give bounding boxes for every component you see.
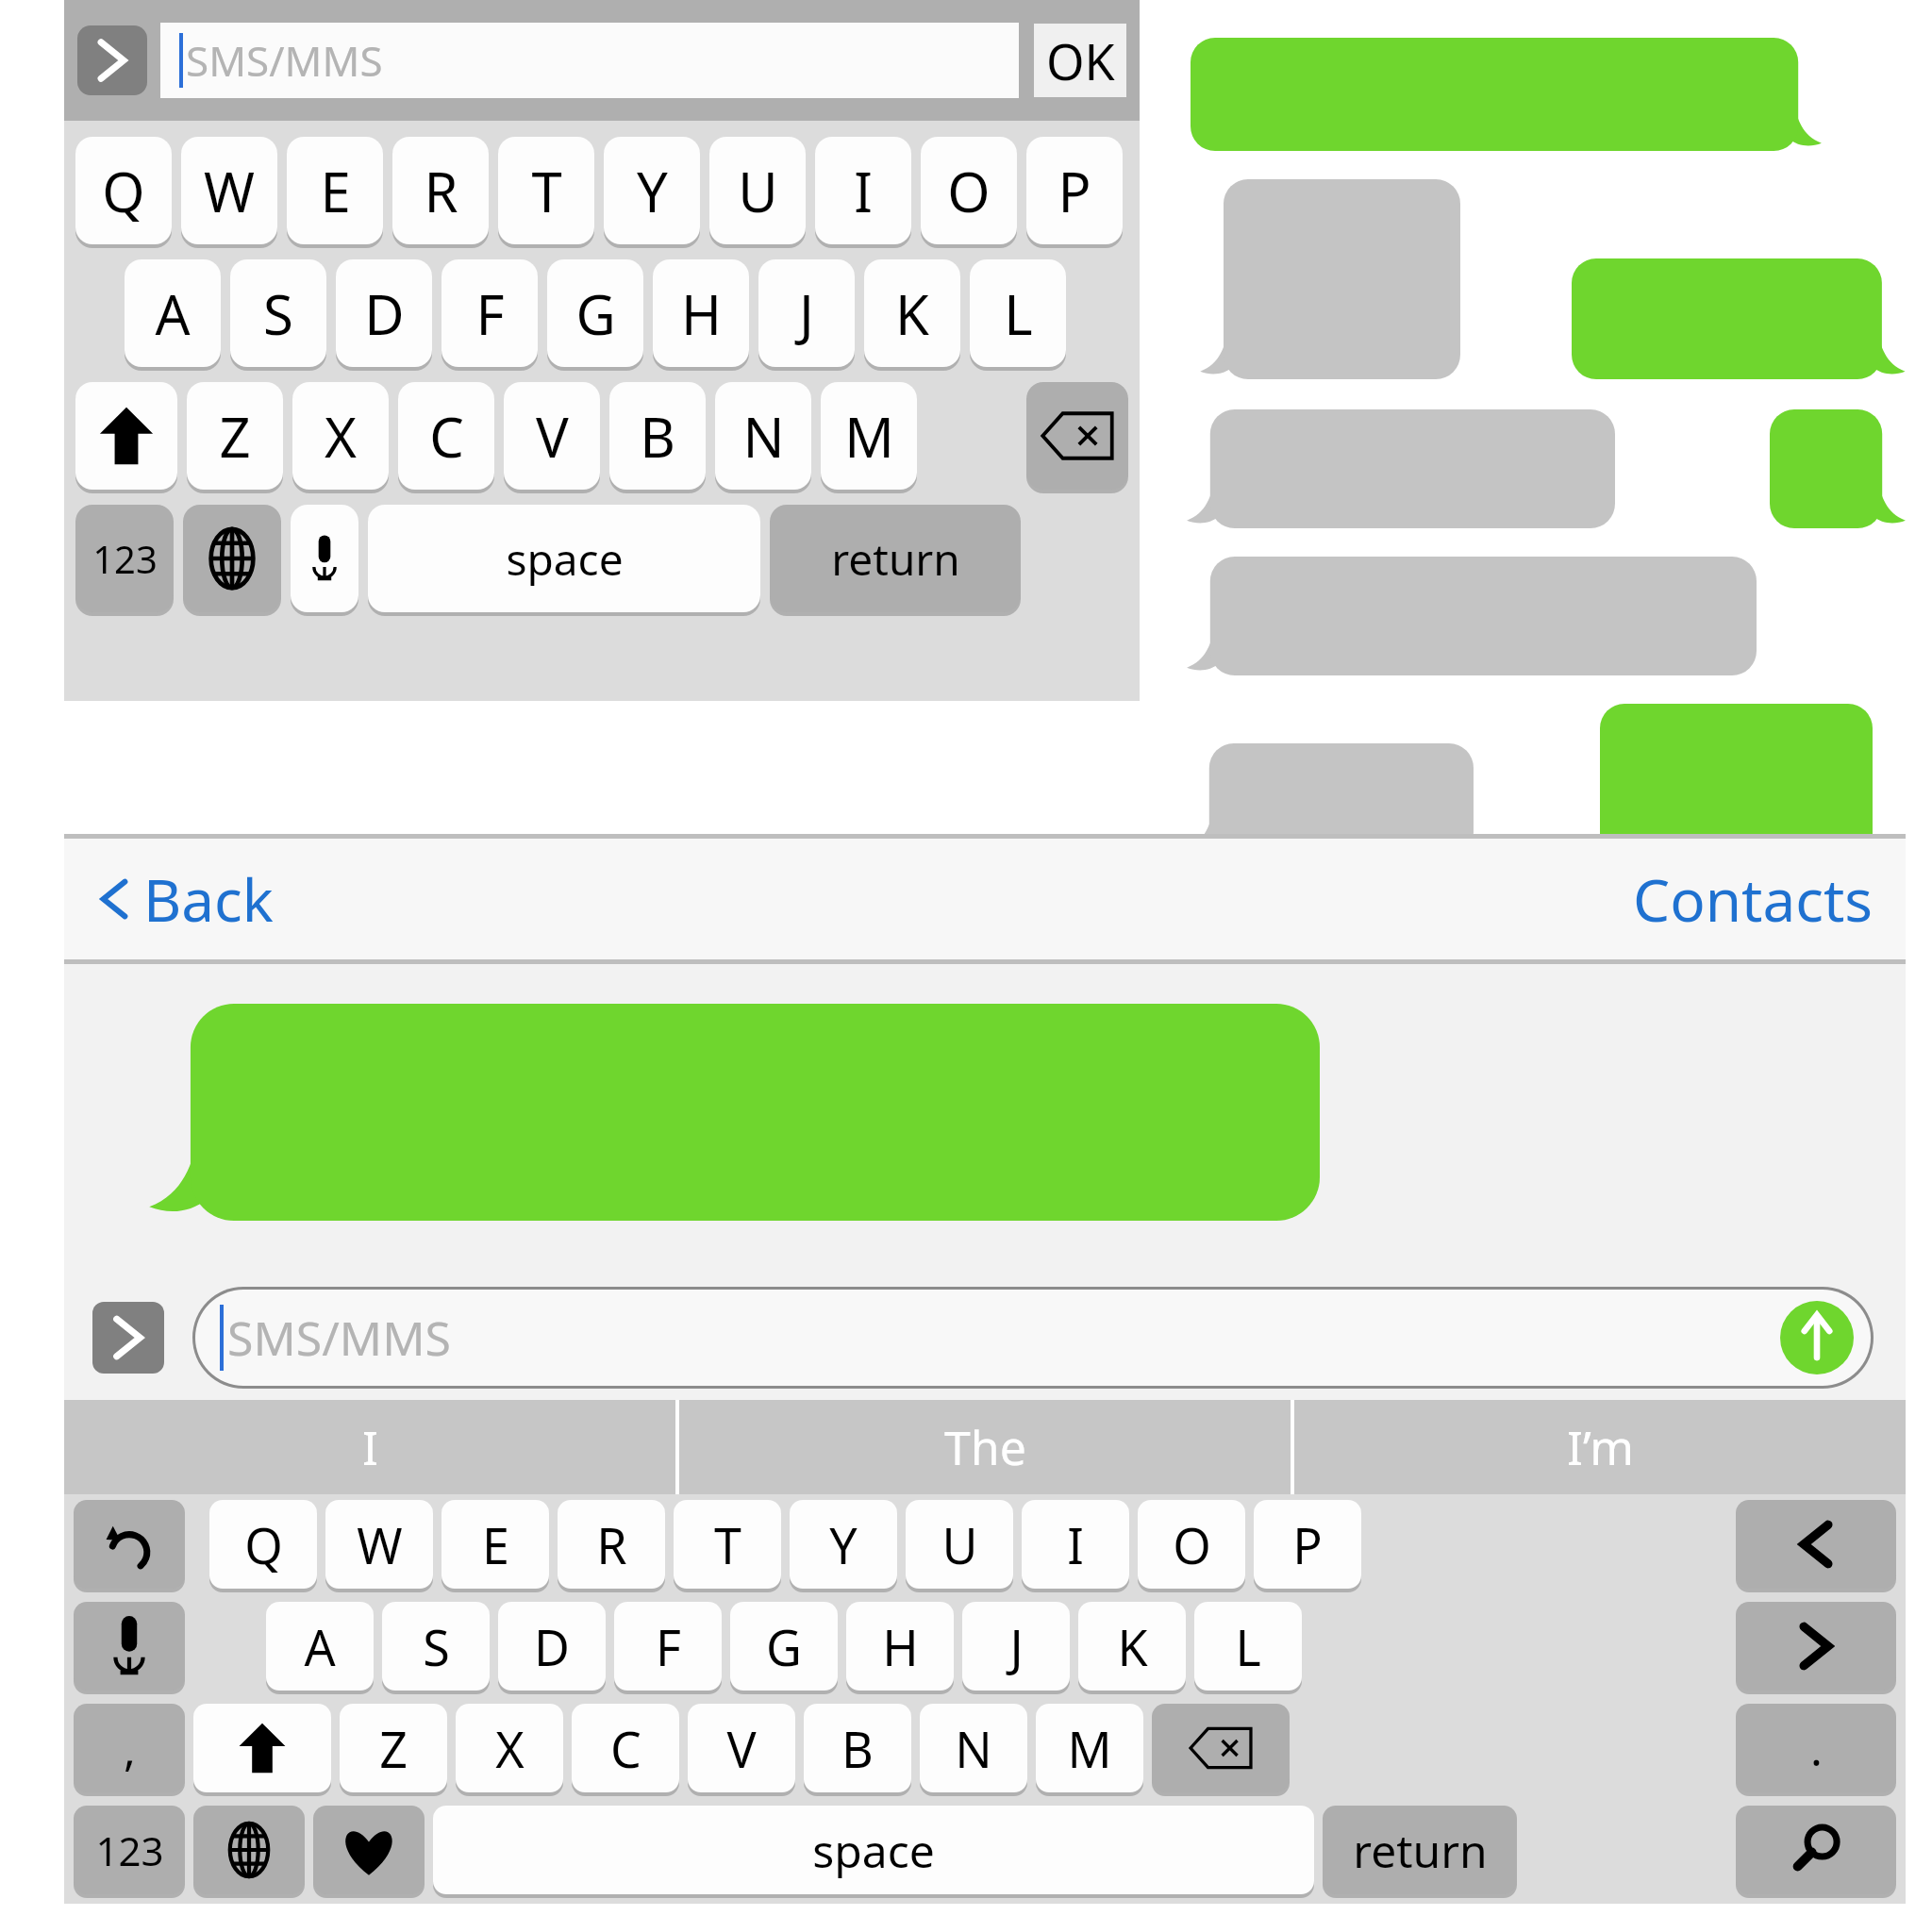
button[interactable]: E [287,137,383,244]
button[interactable]: Back [92,859,274,939]
button[interactable]: L [970,259,1066,367]
button[interactable]: A [125,259,221,367]
button[interactable]: T [498,137,594,244]
staticText: O [1173,1511,1211,1578]
button[interactable]: Q [75,137,172,244]
staticText: C [610,1715,641,1782]
button[interactable]: Backspace [1152,1704,1290,1792]
button[interactable]: Previous [1736,1500,1896,1589]
button[interactable]: Search [1736,1806,1896,1894]
staticText: J [799,276,814,351]
button[interactable]: Y [790,1500,897,1589]
button[interactable]: N [715,382,811,490]
staticText: G [766,1613,802,1680]
button[interactable]: R [392,137,489,244]
staticText: 123 [95,1824,164,1877]
button[interactable]: K [864,259,960,367]
button[interactable]: The [679,1400,1291,1494]
button[interactable]: S [382,1602,490,1690]
button[interactable]: O [921,137,1017,244]
staticText: F [656,1613,681,1680]
button[interactable]: Z [340,1704,447,1792]
button[interactable]: F [614,1602,722,1690]
button[interactable]: D [498,1602,606,1690]
button[interactable]: R [558,1500,665,1589]
button[interactable]: P [1026,137,1123,244]
button[interactable]: Send [1780,1301,1854,1374]
button[interactable]: K [1078,1602,1186,1690]
staticText: Q [102,154,145,228]
button[interactable]: O [1138,1500,1245,1589]
button[interactable]: Z [187,382,283,490]
button[interactable]: U [906,1500,1013,1589]
button[interactable]: G [547,259,643,367]
button[interactable]: B [609,382,706,490]
button[interactable]: More [77,25,147,95]
staticText: Y [637,154,668,228]
button[interactable]: Language [193,1806,305,1894]
button[interactable]: I [1022,1500,1129,1589]
staticText: Y [829,1511,858,1578]
button[interactable]: Language [183,505,281,612]
button[interactable]: A [266,1602,374,1690]
button[interactable]: V [688,1704,795,1792]
button[interactable]: F [441,259,538,367]
button[interactable]: Undo [74,1500,185,1589]
button[interactable]: U [709,137,806,244]
button[interactable]: J [758,259,855,367]
button[interactable]: J [962,1602,1070,1690]
button[interactable]: space [433,1806,1314,1894]
button[interactable]: return [770,505,1021,612]
button[interactable]: T [674,1500,781,1589]
button[interactable]: I [815,137,911,244]
button[interactable]: S [230,259,326,367]
button[interactable]: X [292,382,389,490]
button[interactable]: N [920,1704,1027,1792]
button[interactable]: SMS/MMS [160,23,1019,98]
button[interactable]: space [368,505,760,612]
button[interactable]: W [325,1500,433,1589]
button[interactable]: X [456,1704,563,1792]
button[interactable]: OK [1034,24,1126,97]
button[interactable]: P [1254,1500,1361,1589]
button[interactable]: V [504,382,600,490]
button[interactable]: Contacts [1633,859,1874,939]
button[interactable]: B [804,1704,911,1792]
button[interactable]: Next [1736,1602,1896,1690]
button[interactable]: I’m [1294,1400,1906,1494]
button[interactable]: , [74,1704,185,1792]
button[interactable]: Q [209,1500,317,1589]
button[interactable]: G [730,1602,838,1690]
button[interactable]: C [398,382,494,490]
staticText: H [882,1613,919,1680]
button[interactable]: Dictate [291,505,358,612]
staticText: Contacts [1633,859,1874,939]
staticText: P [1292,1511,1323,1578]
button[interactable]: SMS/MMS [195,1290,1871,1386]
button[interactable]: L [1194,1602,1302,1690]
button[interactable]: M [1036,1704,1143,1792]
button[interactable]: 123 [75,505,174,612]
button[interactable]: I [64,1400,675,1494]
button[interactable]: M [821,382,917,490]
button[interactable]: E [441,1500,549,1589]
staticText: I [854,154,873,228]
button[interactable]: Y [604,137,700,244]
button[interactable]: C [572,1704,679,1792]
staticText: Back [143,859,274,939]
button[interactable]: H [846,1602,954,1690]
button[interactable]: W [181,137,277,244]
button[interactable]: Backspace [1026,382,1128,490]
button[interactable]: More [92,1302,164,1374]
button[interactable]: Dictate [74,1602,185,1690]
button[interactable]: Shift [193,1704,331,1792]
button[interactable]: . [1736,1704,1896,1792]
button[interactable]: Shift [75,382,177,490]
button[interactable]: 123 [74,1806,185,1894]
button[interactable]: Favorites [313,1806,425,1894]
button[interactable]: H [653,259,749,367]
button[interactable]: D [336,259,432,367]
staticText: V [726,1715,757,1782]
staticText: N [955,1715,992,1782]
button[interactable]: return [1323,1806,1517,1894]
